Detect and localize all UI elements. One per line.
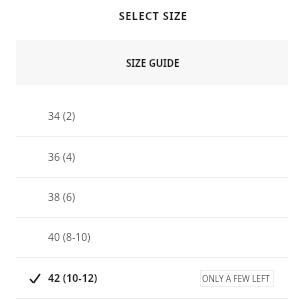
other: Selected size [30, 274, 40, 283]
staticText: SIZE GUIDE [126, 56, 180, 69]
staticText: 38 (6) [48, 190, 76, 204]
button[interactable]: SIZE GUIDE [16, 40, 288, 85]
staticText: 40 (8-10) [48, 230, 91, 244]
button[interactable]: 40 (8-10) [16, 218, 288, 258]
button[interactable]: 36 (4) [16, 138, 288, 178]
button[interactable]: Selected size [16, 259, 288, 299]
staticText: 34 (2) [48, 109, 76, 123]
staticText: 42 (10-12) [48, 271, 98, 285]
staticText: ONLY A FEW LEFT [202, 273, 270, 284]
button[interactable]: 38 (6) [16, 178, 288, 218]
button[interactable]: 34 (2) [16, 97, 288, 137]
staticText: SELECT SIZE [17, 8, 289, 23]
staticText: 36 (4) [48, 150, 76, 164]
